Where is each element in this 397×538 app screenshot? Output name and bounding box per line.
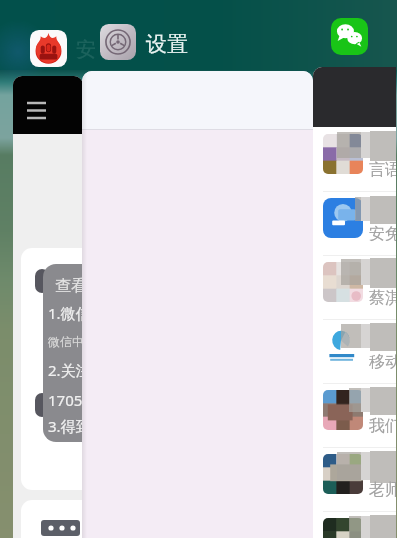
button[interactable]: Recent task [82, 71, 313, 538]
button[interactable]: 安免 [313, 193, 396, 257]
button[interactable]: WeChat [331, 18, 368, 55]
staticText: 言语 [369, 160, 396, 180]
button[interactable]: WeChat recent task [13, 76, 83, 538]
staticText: 2.关注 [48, 360, 83, 380]
button[interactable]: 蔡淇 [313, 257, 396, 321]
button[interactable]: WeChat chats [313, 67, 396, 538]
staticText: 移动 [369, 352, 396, 372]
staticText: 设置 [146, 31, 188, 57]
button[interactable]: AnTuTu Benchmark [30, 30, 67, 67]
button[interactable]: 言语 [313, 129, 396, 193]
button[interactable]: 我们 [313, 385, 396, 449]
staticText: 3.得到 [48, 416, 83, 436]
button[interactable]: 老师 [313, 449, 396, 513]
staticText: 17052 [48, 390, 83, 410]
staticText: 我们 [369, 416, 396, 436]
staticText: 查看 [55, 276, 83, 296]
staticText: 老师 [369, 480, 396, 500]
staticText: 安免 [369, 224, 396, 244]
staticText: 蔡淇 [369, 288, 396, 308]
button[interactable]: Settings [100, 24, 136, 60]
staticText: 微信中 [48, 334, 83, 349]
staticText: 1.微信 [48, 303, 83, 323]
staticText: 安 [76, 37, 96, 62]
button[interactable]: 移动 [313, 321, 396, 385]
button[interactable] [313, 513, 396, 538]
